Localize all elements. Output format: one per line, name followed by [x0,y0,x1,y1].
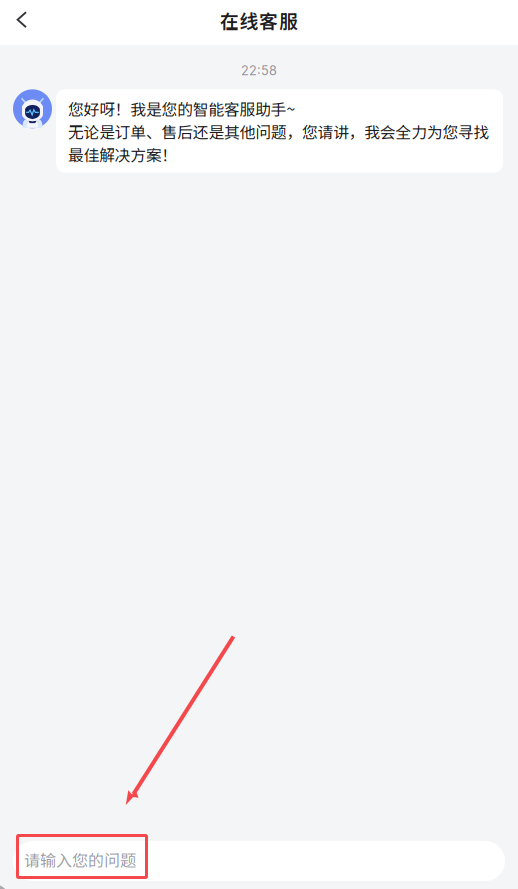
button[interactable]: Back [0,3,42,37]
staticText: 您好呀！我是您的智能客服助手~ 无论是订单、售后还是其他问题，您请讲，我会全力为… [68,97,490,166]
staticText: 22:58 [241,63,277,78]
button[interactable]: 请输入您的问题 [13,841,505,881]
staticText: 在线客服 [220,6,298,33]
staticText: 请输入您的问题 [24,848,136,871]
